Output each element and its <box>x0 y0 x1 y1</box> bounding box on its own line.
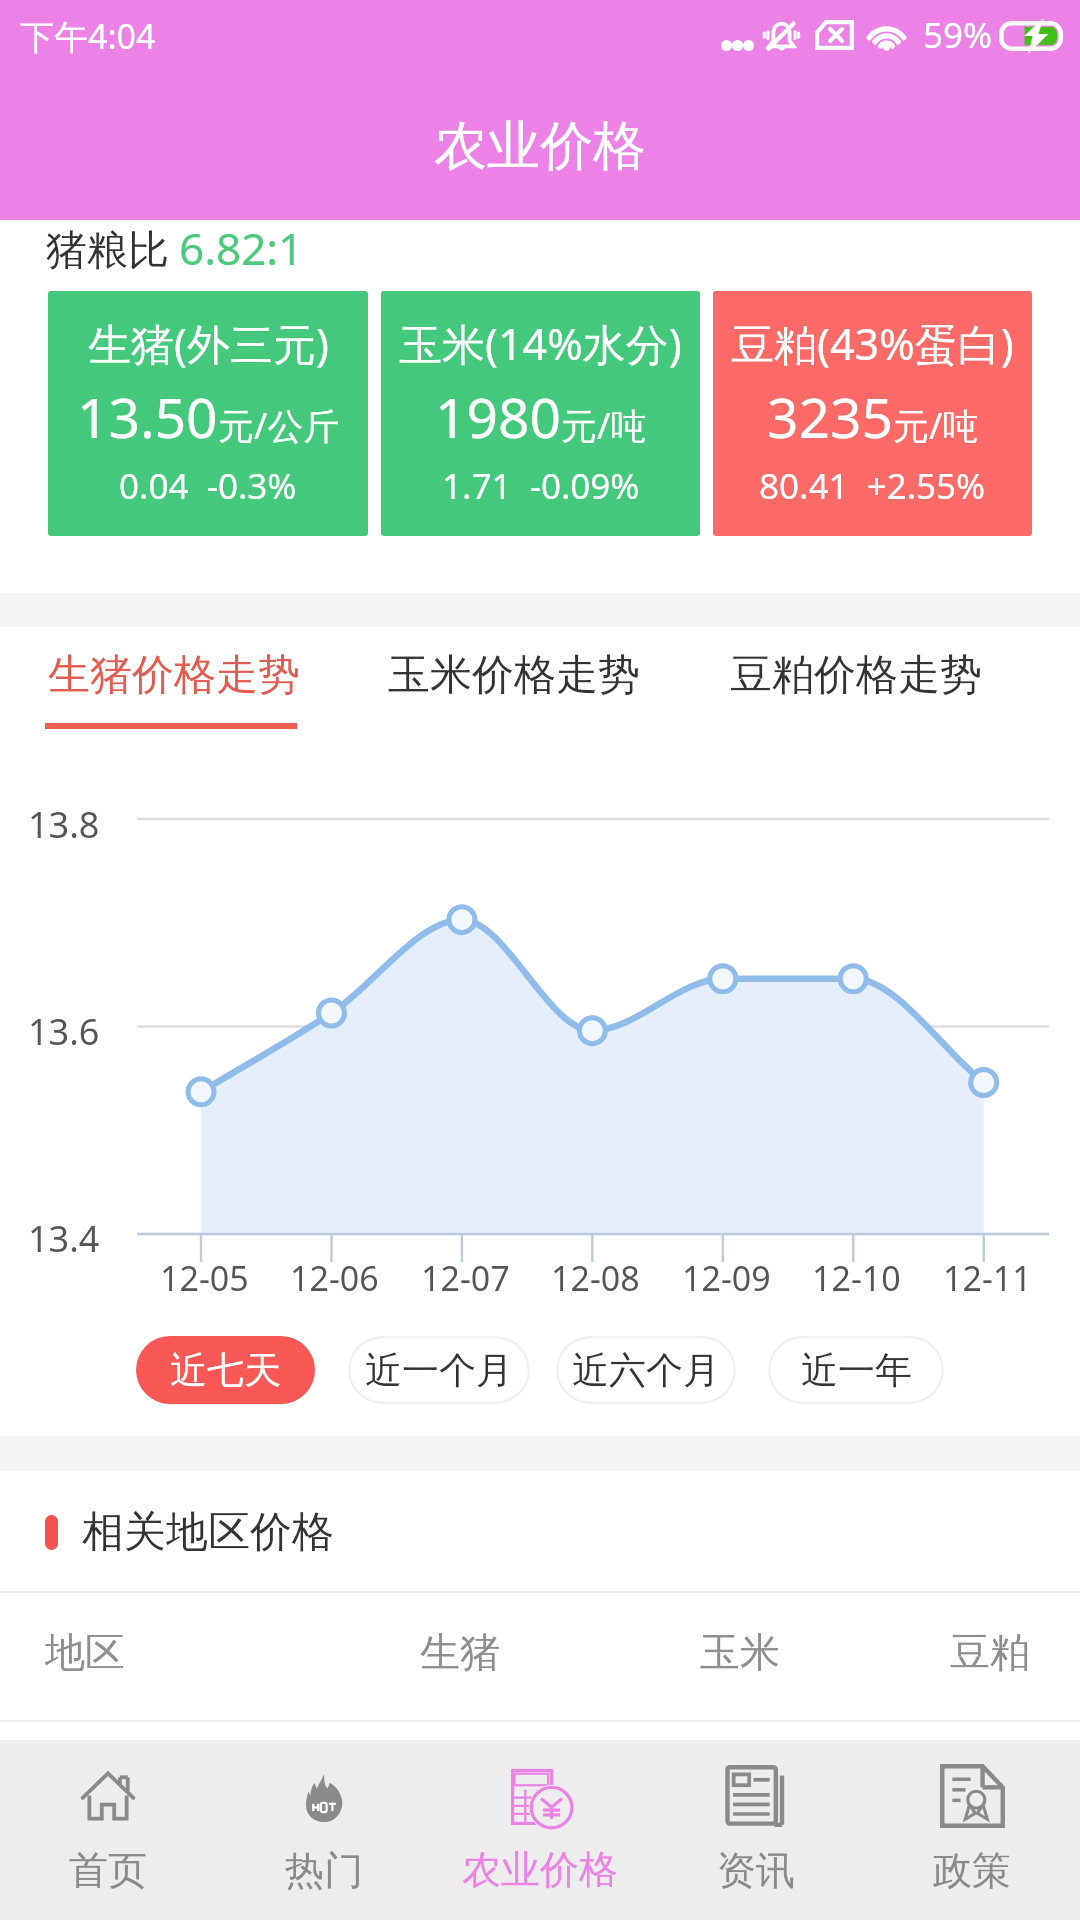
staticText: 12-11 <box>943 1255 1032 1301</box>
staticText: 生猪(外三元) <box>88 314 329 373</box>
button[interactable]: 生猪价格走势 <box>34 622 314 729</box>
staticText: 近一年 <box>801 1347 912 1394</box>
staticText: 6.82:1 <box>179 218 304 278</box>
staticText: 元/吨 <box>561 401 647 450</box>
staticText: 生猪价格走势 <box>48 649 300 702</box>
staticText: 12-05 <box>160 1255 249 1301</box>
button[interactable]: 相关地区价格 <box>0 1471 1080 1593</box>
button[interactable]: 农业价格 <box>432 1740 648 1920</box>
staticText: 政策 <box>933 1846 1011 1895</box>
staticText: 地区 <box>45 1627 125 1677</box>
staticText: 玉米 <box>700 1627 780 1677</box>
other: Silent mode <box>763 19 800 58</box>
staticText: 猪粮比 <box>46 225 169 277</box>
staticText: 近一个月 <box>365 1347 513 1394</box>
staticText: 80.41 +2.55% <box>759 462 986 510</box>
staticText: 0.04 -0.3% <box>119 462 297 510</box>
staticText: 元/公斤 <box>218 401 340 450</box>
staticText: 玉米(14%水分) <box>399 314 682 373</box>
staticText: 13.4 <box>28 1214 100 1263</box>
other: No SIM card <box>815 20 854 50</box>
button[interactable]: 玉米(14%水分) <box>381 291 700 536</box>
staticText: 豆粕(43%蛋白) <box>731 314 1014 373</box>
staticText: 59% <box>923 11 993 59</box>
button[interactable]: 豆粕(43%蛋白) <box>713 291 1032 536</box>
staticText: 13.8 <box>28 800 100 849</box>
staticText: 豆粕价格走势 <box>730 649 982 702</box>
staticText: 农业价格 <box>462 1845 618 1894</box>
button[interactable]: 热门 <box>216 1740 432 1920</box>
button[interactable]: 政策 <box>864 1740 1080 1920</box>
staticText: 12-10 <box>812 1255 901 1301</box>
staticText: 12-09 <box>682 1255 771 1301</box>
staticText: 近六个月 <box>572 1347 720 1394</box>
staticText: 豆粕 <box>950 1627 1030 1677</box>
other: Wi-Fi connected <box>865 19 908 52</box>
staticText: 首页 <box>69 1846 147 1895</box>
staticText: 1980 <box>435 379 561 454</box>
staticText: 近七天 <box>170 1347 281 1394</box>
button[interactable]: 近一年 <box>768 1336 944 1404</box>
button[interactable]: 资讯 <box>648 1740 864 1920</box>
staticText: 12-07 <box>421 1255 510 1301</box>
button[interactable]: 近六个月 <box>556 1336 736 1404</box>
staticText: 资讯 <box>717 1846 795 1895</box>
staticText: 生猪 <box>420 1627 500 1677</box>
staticText: 农业价格 <box>434 113 646 180</box>
button[interactable]: 首页 <box>0 1740 216 1920</box>
button[interactable]: 近七天 <box>136 1336 315 1404</box>
staticText: 相关地区价格 <box>82 1506 334 1559</box>
staticText: 13.6 <box>28 1007 100 1056</box>
staticText: 3235 <box>767 379 893 454</box>
staticText: 下午4:04 <box>20 13 156 59</box>
other: More status icons <box>721 40 754 51</box>
button[interactable]: 近一个月 <box>348 1336 530 1404</box>
staticText: 热门 <box>285 1846 363 1895</box>
button[interactable]: 豆粕价格走势 <box>716 622 996 729</box>
button[interactable]: 生猪(外三元) <box>48 291 368 536</box>
staticText: 13.50 <box>77 379 218 454</box>
staticText: 玉米价格走势 <box>388 649 640 702</box>
staticText: 元/吨 <box>893 401 979 450</box>
button[interactable]: 玉米价格走势 <box>374 622 654 729</box>
staticText: 12-06 <box>290 1255 379 1301</box>
staticText: 12-08 <box>551 1255 640 1301</box>
staticText: 1.71 -0.09% <box>442 462 640 510</box>
other: Battery charging 59 percent <box>999 21 1063 51</box>
